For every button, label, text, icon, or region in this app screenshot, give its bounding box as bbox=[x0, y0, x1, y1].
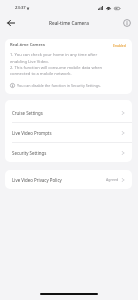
button[interactable]: Security Settings bbox=[5, 143, 132, 162]
button[interactable]: Back bbox=[4, 16, 18, 30]
button[interactable]: Live Video Prompts bbox=[5, 123, 132, 143]
staticText: Cruise Settings bbox=[12, 110, 43, 116]
button[interactable]: Live Video Privacy Policy bbox=[5, 170, 132, 189]
staticText: 1. You can check your home in any time a… bbox=[10, 52, 103, 76]
staticText: Security Settings bbox=[12, 150, 47, 156]
staticText: You can disable the function in Security… bbox=[17, 83, 101, 88]
button[interactable]: Cruise Settings bbox=[5, 103, 132, 123]
staticText: Live Video Prompts bbox=[12, 130, 52, 136]
staticText: Live Video Privacy Policy bbox=[12, 177, 62, 183]
staticText: 23:37 bbox=[15, 5, 26, 11]
staticText: Real-time Camera bbox=[10, 42, 45, 48]
staticText: Enabled bbox=[113, 43, 126, 48]
staticText: Agreed bbox=[106, 177, 119, 182]
staticText: Real-time Camera bbox=[49, 20, 89, 26]
button[interactable]: Help bbox=[120, 16, 134, 30]
